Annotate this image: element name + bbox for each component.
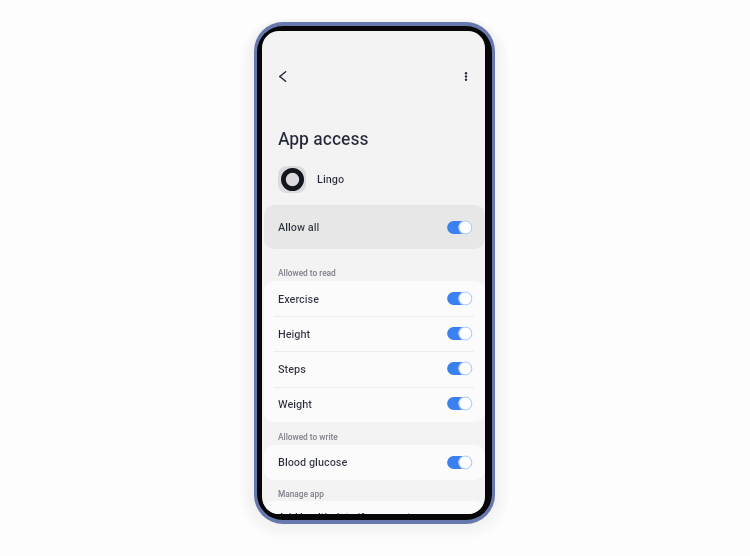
staticText: Add health data if you want: [278, 511, 411, 514]
button[interactable]: [447, 291, 472, 306]
button[interactable]: [447, 455, 472, 470]
staticText: Allow all: [278, 221, 320, 234]
staticText: Allowed to write: [278, 432, 338, 442]
button[interactable]: More options: [452, 62, 480, 90]
button[interactable]: Back: [268, 62, 296, 90]
button[interactable]: Allow all: [264, 205, 485, 249]
button[interactable]: [447, 361, 472, 376]
button[interactable]: Blood glucose: [264, 445, 485, 480]
staticText: Height: [278, 328, 311, 341]
button[interactable]: Height: [264, 316, 485, 351]
button[interactable]: Steps: [264, 351, 485, 386]
button[interactable]: Add health data if you want: [264, 501, 485, 514]
staticText: Steps: [278, 363, 306, 376]
button[interactable]: Weight: [264, 386, 485, 421]
staticText: Blood glucose: [278, 456, 348, 469]
staticText: Manage app: [278, 489, 324, 499]
staticText: Exercise: [278, 293, 320, 306]
button[interactable]: Exercise: [264, 281, 485, 316]
staticText: Weight: [278, 398, 312, 411]
button[interactable]: [447, 396, 472, 411]
button[interactable]: [447, 326, 472, 341]
staticText: Allowed to read: [278, 268, 336, 278]
staticText: App access: [278, 129, 369, 150]
button[interactable]: [447, 220, 472, 235]
staticText: Lingo: [317, 173, 345, 186]
